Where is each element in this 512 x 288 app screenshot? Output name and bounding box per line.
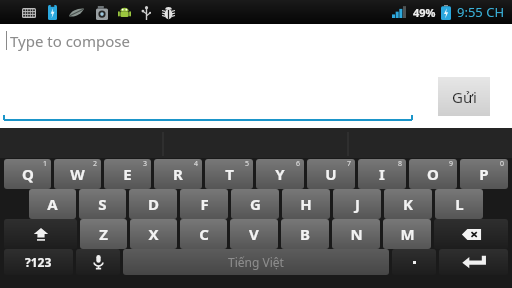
staticText: 5 [245,159,250,169]
button[interactable]: V [230,219,278,249]
staticText: 0 [500,159,505,169]
button[interactable]: J [333,189,381,219]
button[interactable]: I [358,159,406,189]
button[interactable]: W [54,159,101,189]
staticText: 8 [398,159,403,169]
button[interactable]: O [409,159,457,189]
staticText: 49% [413,5,436,20]
staticText: Z [99,224,108,244]
button[interactable]: Q [4,159,51,189]
staticText: 9 [449,159,454,169]
staticText: E [123,164,132,184]
button[interactable]: D [129,189,177,219]
button[interactable]: G [231,189,279,219]
staticText: W [70,164,85,184]
button[interactable]: F [180,189,228,219]
staticText: Type to compose [10,31,130,51]
staticText: 2 [93,159,98,169]
staticText: N [350,224,363,244]
button[interactable]: Gửi [438,77,490,116]
staticText: L [455,194,464,214]
staticText: U [325,164,337,184]
staticText: R [173,164,183,184]
staticText: 7 [347,159,352,169]
staticText: ?123 [25,254,52,270]
button[interactable]: Z [80,219,127,249]
button[interactable]: N [332,219,380,249]
staticText: Q [22,164,34,184]
button[interactable]: R [154,159,202,189]
button[interactable]: L [435,189,483,219]
staticText: T [225,164,234,184]
staticText: X [148,224,159,244]
staticText: A [47,194,58,214]
button[interactable]: Type to compose [4,28,414,120]
staticText: J [355,194,360,214]
button[interactable]: Voice input [76,249,120,275]
staticText: P [479,164,489,184]
button[interactable]: Tiếng Việt [123,249,389,275]
button[interactable]: U [307,159,355,189]
button[interactable]: K [384,189,432,219]
staticText: 6 [296,159,301,169]
button[interactable]: S [79,189,126,219]
staticText: B [300,224,310,244]
staticText: O [427,164,439,184]
button[interactable]: Symbols [4,249,73,275]
button[interactable]: M [383,219,431,249]
button[interactable]: Delete [434,219,508,249]
staticText: S [98,194,107,214]
button[interactable]: Y [256,159,304,189]
button[interactable]: H [282,189,330,219]
staticText: H [300,194,312,214]
button[interactable]: B [281,219,329,249]
staticText: K [403,194,413,214]
staticText: 1 [43,159,48,169]
staticText: V [249,224,259,244]
button[interactable]: E [104,159,151,189]
staticText: D [148,194,159,214]
staticText: G [250,194,261,214]
button[interactable]: Enter [439,249,508,275]
button[interactable]: A [29,189,76,219]
button[interactable]: Shift [4,219,77,249]
staticText: Y [275,164,285,184]
staticText: Tiếng Việt [228,254,284,270]
button[interactable]: C [180,219,227,249]
button[interactable]: T [205,159,253,189]
staticText: C [199,224,209,244]
button[interactable]: P [460,159,508,189]
staticText: I [379,164,385,184]
staticText: M [400,224,415,244]
staticText: 4 [194,159,199,169]
staticText: Gửi [452,87,477,107]
staticText: F [200,194,209,214]
button[interactable]: Period [392,249,436,275]
staticText: 3 [143,159,148,169]
button[interactable]: X [130,219,177,249]
staticText: 9:55 CH [457,3,505,21]
